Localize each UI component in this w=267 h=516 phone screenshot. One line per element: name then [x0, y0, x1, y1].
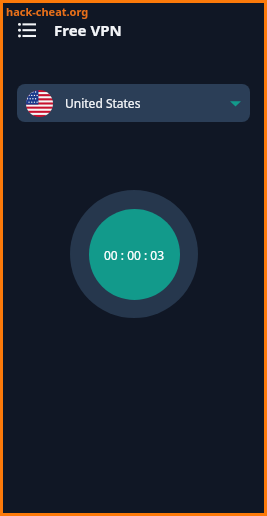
staticText: Free VPN	[54, 20, 122, 40]
button[interactable]: Open navigation menu	[10, 13, 44, 47]
button[interactable]: Disconnect VPN	[70, 190, 198, 318]
button[interactable]: United States	[17, 84, 250, 122]
staticText: 00 : 00 : 03	[104, 247, 165, 263]
staticText: hack-cheat.org	[6, 4, 89, 19]
staticText: United States	[65, 95, 230, 111]
